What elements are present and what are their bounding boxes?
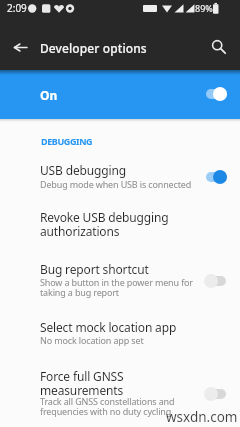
- button[interactable]: [204, 387, 226, 401]
- staticText: On: [40, 87, 58, 103]
- staticText: Developer options: [40, 40, 147, 56]
- staticText: Select mock location app: [40, 319, 177, 335]
- staticText: Show a button in the power menu for: [40, 276, 193, 288]
- button[interactable]: [206, 34, 232, 60]
- button[interactable]: Bug report shortcut: [0, 252, 240, 306]
- staticText: Force full GNSS: [40, 368, 124, 384]
- button[interactable]: [205, 170, 227, 184]
- staticText: Bug report shortcut: [40, 261, 149, 277]
- button[interactable]: [0, 70, 240, 119]
- button[interactable]: [205, 87, 227, 101]
- staticText: taking a bug report: [40, 286, 119, 298]
- button[interactable]: [6, 33, 34, 61]
- button[interactable]: USB debugging: [0, 157, 240, 197]
- staticText: No mock location app set: [40, 334, 144, 346]
- staticText: 2:09: [7, 1, 27, 15]
- staticText: DEBUGGING: [41, 135, 93, 147]
- staticText: USB debugging: [40, 162, 126, 178]
- staticText: 89%: [195, 2, 213, 14]
- staticText: wsxdn.com: [166, 408, 238, 426]
- staticText: frequencies with no duty cycling: [40, 405, 172, 417]
- button[interactable]: Revoke USB debugging: [0, 202, 240, 246]
- button[interactable]: [204, 274, 226, 288]
- staticText: Debug mode when USB is connected: [40, 178, 192, 190]
- staticText: authorizations: [40, 223, 120, 239]
- button[interactable]: Force full GNSS: [0, 358, 240, 420]
- staticText: Revoke USB debugging: [40, 209, 169, 225]
- staticText: measurements: [40, 382, 124, 398]
- staticText: Track all GNSS constellations and: [40, 395, 175, 407]
- button[interactable]: Select mock location app: [0, 312, 240, 352]
